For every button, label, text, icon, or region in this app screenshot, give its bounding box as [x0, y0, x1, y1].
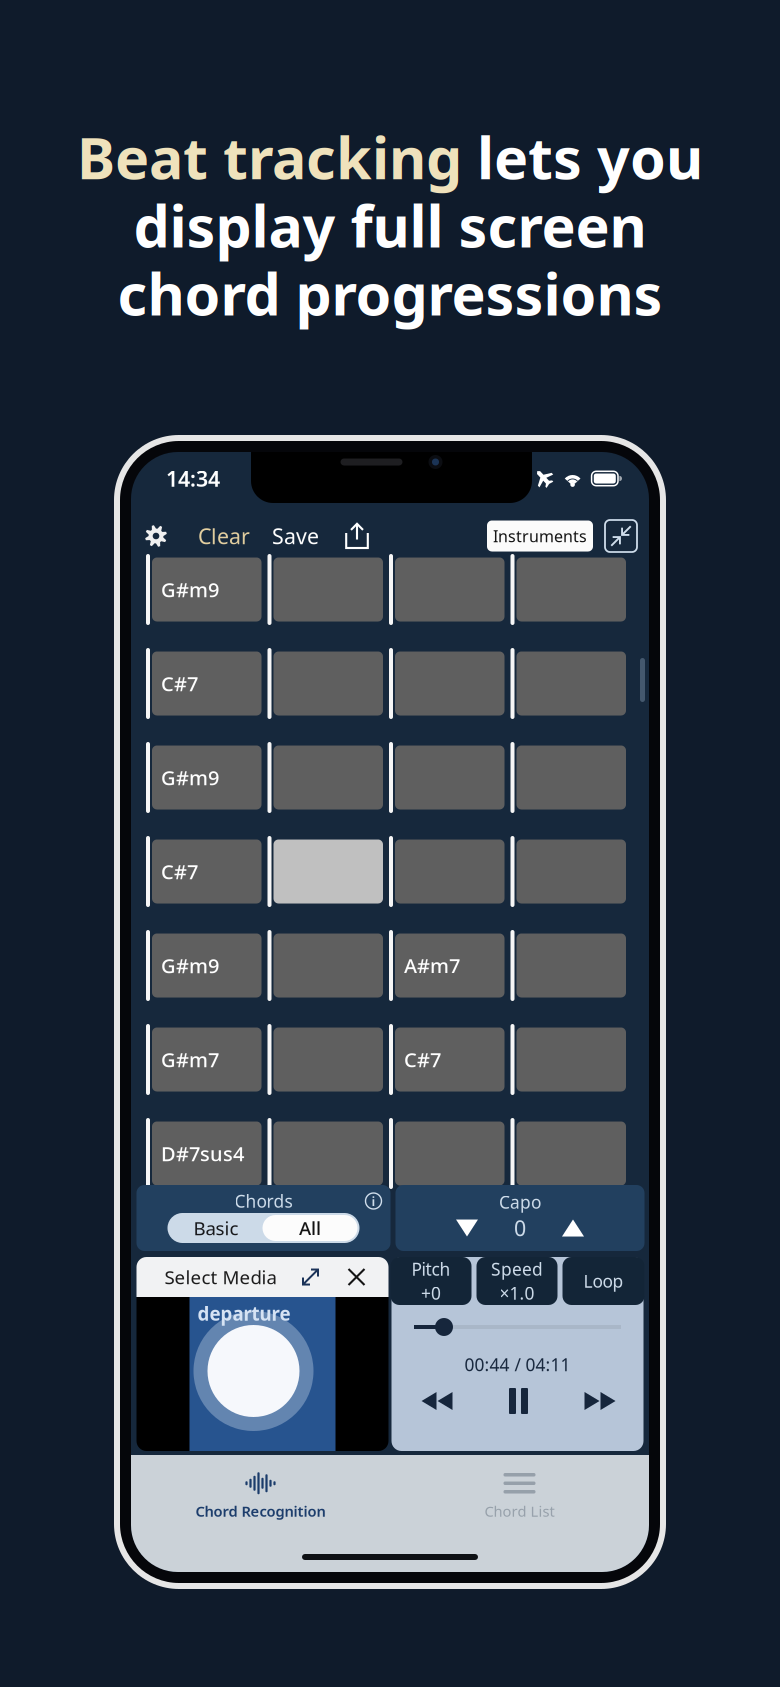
staticText: Select Media	[164, 1265, 276, 1289]
button[interactable]: Close	[344, 1265, 368, 1289]
staticText: departure	[197, 1301, 290, 1326]
button[interactable]	[510, 1024, 626, 1095]
button[interactable]	[510, 930, 626, 1001]
staticText: Chord Recognition	[195, 1501, 325, 1521]
staticText: A#m7	[404, 952, 460, 979]
button[interactable]: G#m7	[146, 1024, 261, 1095]
button[interactable]	[267, 836, 383, 907]
button[interactable]	[389, 742, 504, 813]
button[interactable]: Loop	[562, 1257, 644, 1305]
button[interactable]: Fast forward	[582, 1391, 617, 1411]
staticText: C#7	[161, 670, 198, 697]
button[interactable]: G#m9	[146, 930, 261, 1001]
button[interactable]	[267, 742, 383, 813]
staticText: +0	[421, 1281, 441, 1304]
staticText: G#m9	[161, 764, 219, 791]
staticText: 0	[514, 1214, 526, 1242]
button[interactable]: G#m9	[146, 742, 261, 813]
button[interactable]: Chord List	[390, 1470, 649, 1522]
button[interactable]: D#7sus4	[146, 1118, 261, 1189]
button[interactable]: Basic	[169, 1214, 262, 1242]
staticText: C#7	[404, 1046, 441, 1073]
button[interactable]	[267, 1118, 383, 1189]
button[interactable]	[389, 554, 504, 625]
button[interactable]: Rewind	[419, 1391, 454, 1411]
button[interactable]: Pitch	[390, 1257, 471, 1305]
button[interactable]	[510, 554, 626, 625]
staticText: G#m9	[161, 576, 219, 603]
staticText: chord progressions	[117, 255, 662, 331]
staticText: ×1.0	[499, 1281, 534, 1304]
staticText: D#7sus4	[161, 1140, 244, 1167]
button[interactable]: Clear	[171, 519, 261, 553]
staticText: display full screen	[133, 187, 646, 263]
staticText: lets you	[462, 119, 703, 195]
staticText: UpdateStar.com	[161, 1496, 618, 1577]
button[interactable]: Increase capo	[556, 1215, 590, 1241]
staticText: Clear	[198, 522, 250, 550]
button[interactable]	[267, 930, 383, 1001]
staticText: Chords	[234, 1189, 292, 1212]
button[interactable]	[510, 648, 626, 719]
staticText: C#7	[161, 858, 198, 885]
button[interactable]: G#m9	[146, 554, 261, 625]
button[interactable]	[267, 648, 383, 719]
button[interactable]: Decrease capo	[450, 1215, 484, 1241]
button[interactable]: C#7	[146, 648, 261, 719]
button[interactable]	[267, 1024, 383, 1095]
button[interactable]	[389, 648, 504, 719]
staticText: Save	[272, 522, 319, 550]
staticText: G#m7	[161, 1046, 219, 1073]
button[interactable]: C#7	[389, 1024, 504, 1095]
button[interactable]	[510, 1118, 626, 1189]
button[interactable]: All	[262, 1215, 357, 1241]
button[interactable]	[267, 554, 383, 625]
staticText: Chord List	[484, 1501, 554, 1521]
button[interactable]: Exit full screen	[605, 520, 637, 552]
button[interactable]: C#7	[146, 836, 261, 907]
staticText: Instruments	[493, 525, 587, 547]
staticText: Capo	[499, 1190, 541, 1213]
staticText: 00:44 / 04:11	[464, 1353, 570, 1376]
button[interactable]: Save	[261, 519, 329, 553]
button[interactable]: Expand	[298, 1265, 322, 1289]
staticText: Basic	[193, 1216, 238, 1240]
button[interactable]: A#m7	[389, 930, 504, 1001]
button[interactable]: Chord Recognition	[131, 1470, 390, 1522]
button[interactable]	[389, 1118, 504, 1189]
button[interactable]: Pause	[506, 1388, 530, 1414]
staticText: G#m9	[161, 952, 219, 979]
button[interactable]	[510, 742, 626, 813]
staticText: 14:34	[166, 464, 220, 493]
button[interactable]	[389, 836, 504, 907]
button[interactable]: Share	[329, 519, 372, 553]
button[interactable]	[510, 836, 626, 907]
staticText: Speed	[491, 1257, 543, 1280]
staticText: Beat tracking	[77, 119, 462, 195]
staticText: Loop	[583, 1269, 623, 1292]
button[interactable]: Settings	[141, 519, 171, 553]
button[interactable]: Speed	[476, 1257, 557, 1305]
staticText: i	[371, 1192, 375, 1210]
staticText: All	[299, 1216, 321, 1240]
staticText: Pitch	[411, 1257, 450, 1280]
button[interactable]: Instruments	[487, 520, 593, 551]
